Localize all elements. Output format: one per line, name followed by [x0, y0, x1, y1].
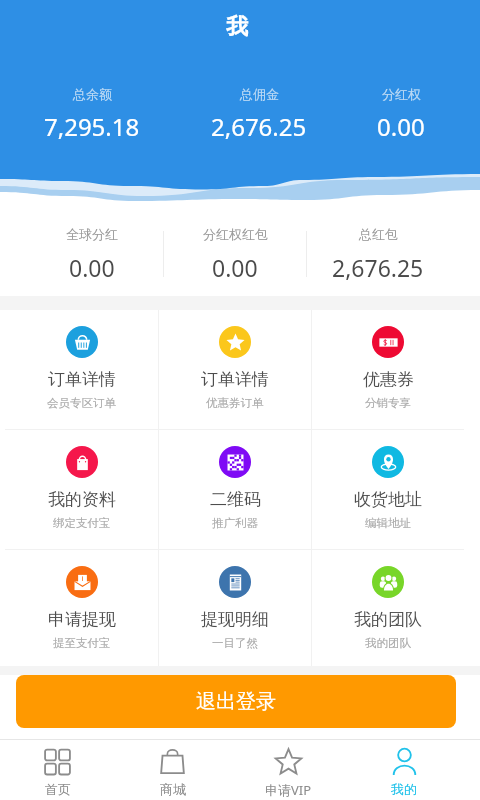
staticText: 绑定支付宝	[53, 516, 111, 530]
button[interactable]: 我的团队	[312, 550, 464, 666]
button[interactable]: 退出登录	[16, 675, 456, 728]
staticText: 2,676.25	[211, 110, 307, 143]
staticText: 全球分红	[66, 226, 118, 242]
staticText: 我的团队	[354, 609, 422, 630]
button[interactable]: 申请VIP	[230, 740, 346, 800]
staticText: 编辑地址	[365, 516, 411, 530]
button[interactable]: 优惠券	[312, 310, 464, 429]
button[interactable]: 提现明细	[159, 550, 311, 666]
button[interactable]: 我的资料	[5, 430, 158, 549]
staticText: 7,295.18	[44, 110, 140, 143]
staticText: 总红包	[359, 226, 398, 242]
staticText: 订单详情	[48, 369, 116, 390]
button[interactable]: 收货地址	[312, 430, 464, 549]
staticText: 总佣金	[240, 86, 279, 102]
staticText: 提至支付宝	[53, 636, 111, 650]
staticText: 0.00	[212, 252, 258, 283]
staticText: 优惠券订单	[206, 396, 264, 410]
button[interactable]: 首页	[0, 740, 115, 800]
staticText: 分红权红包	[203, 226, 268, 242]
staticText: 我的团队	[365, 636, 411, 650]
staticText: 提现明细	[201, 609, 269, 630]
staticText: 我	[226, 13, 248, 41]
staticText: 推广利器	[212, 516, 258, 530]
staticText: 申请提现	[48, 609, 116, 630]
button[interactable]: 订单详情	[159, 310, 311, 429]
staticText: 收货地址	[354, 489, 422, 510]
staticText: 我的	[391, 781, 417, 797]
button[interactable]: 二维码	[159, 430, 311, 549]
staticText: 二维码	[210, 489, 261, 510]
button[interactable]: 我的	[346, 740, 462, 800]
staticText: 2,676.25	[332, 252, 424, 283]
staticText: 会员专区订单	[47, 396, 116, 410]
staticText: 分红权	[382, 86, 421, 102]
staticText: 申请VIP	[265, 781, 312, 799]
staticText: 商城	[160, 781, 186, 797]
staticText: 订单详情	[201, 369, 269, 390]
staticText: 我的资料	[48, 489, 116, 510]
staticText: 0.00	[69, 252, 115, 283]
staticText: 首页	[45, 781, 71, 797]
button[interactable]: 订单详情	[5, 310, 158, 429]
button[interactable]: 商城	[115, 740, 230, 800]
staticText: 分销专享	[365, 396, 411, 410]
staticText: 一目了然	[212, 636, 258, 650]
button[interactable]: 申请提现	[5, 550, 158, 666]
staticText: 总余额	[73, 86, 112, 102]
staticText: 0.00	[377, 110, 425, 143]
staticText: 优惠券	[363, 369, 414, 390]
staticText: 退出登录	[196, 689, 276, 714]
